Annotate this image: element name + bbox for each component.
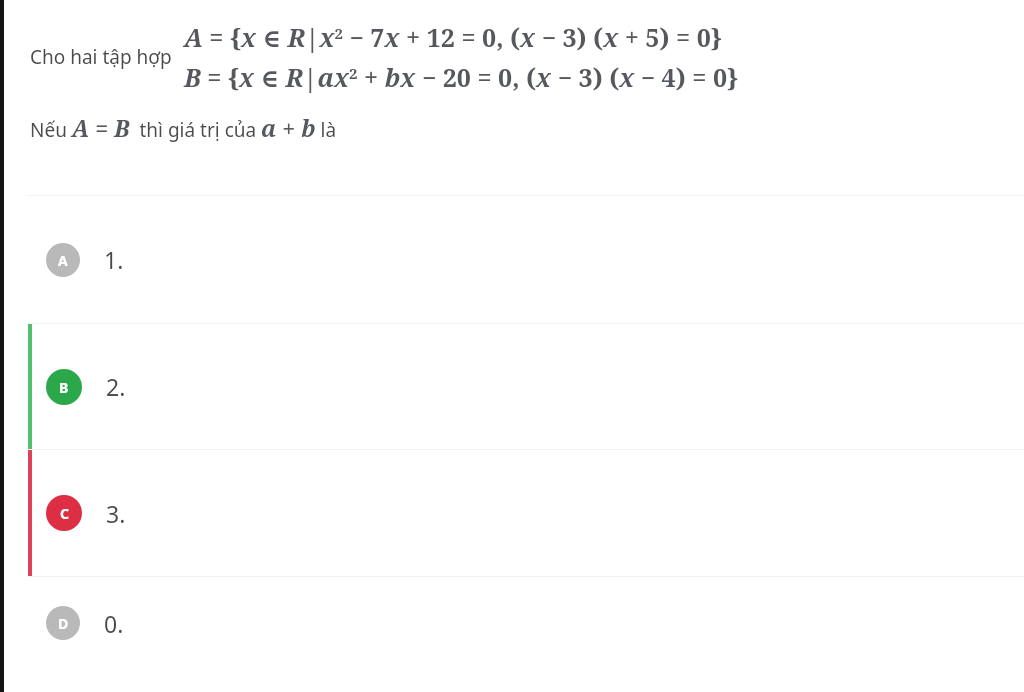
staticText: B (59, 378, 69, 397)
staticText: 3. (106, 498, 126, 529)
staticText: 1. (104, 244, 124, 275)
staticText: Nếu A = B thì giá trị của a + b là (30, 112, 337, 143)
staticText: A = {x ∈ R|x2 − 7x + 12 = 0, (x − 3) (x … (184, 20, 722, 54)
button[interactable]: D (0, 577, 1024, 669)
staticText: C (60, 504, 69, 523)
staticText: 2. (106, 371, 126, 402)
staticText: D (58, 614, 69, 633)
button[interactable]: C (0, 450, 1024, 576)
staticText: Cho hai tập hợp (30, 44, 172, 70)
staticText: A (58, 251, 68, 270)
staticText: 0. (104, 608, 124, 639)
staticText: B = {x ∈ R|ax2 + bx − 20 = 0, (x − 3) (x… (184, 60, 739, 94)
button[interactable]: B (0, 324, 1024, 449)
button[interactable]: A (0, 196, 1024, 323)
